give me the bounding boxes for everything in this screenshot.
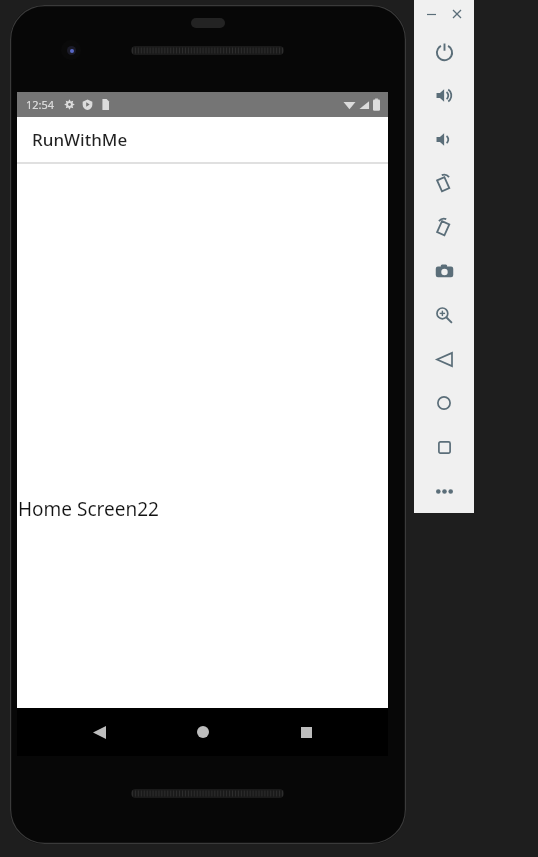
button[interactable]: Home Screen22 xyxy=(18,496,159,522)
button[interactable]: Home xyxy=(181,710,225,754)
button[interactable]: Recent apps xyxy=(284,710,328,754)
button[interactable]: Volume up xyxy=(414,73,474,117)
button[interactable]: Volume down xyxy=(414,117,474,161)
button[interactable]: Back xyxy=(414,337,474,381)
button[interactable]: Take screenshot xyxy=(414,249,474,293)
staticText: RunWithMe xyxy=(32,128,128,151)
button[interactable]: Power xyxy=(414,29,474,73)
button[interactable]: Zoom xyxy=(414,293,474,337)
staticText: 12:54 xyxy=(26,97,55,112)
button[interactable]: More xyxy=(414,469,474,513)
button[interactable]: Home xyxy=(414,381,474,425)
button[interactable]: Overview xyxy=(414,425,474,469)
button[interactable]: Minimize xyxy=(423,6,439,22)
button[interactable]: RunWithMe xyxy=(17,117,388,162)
button[interactable]: Rotate left xyxy=(414,161,474,205)
button[interactable]: Close xyxy=(449,6,465,22)
button[interactable]: Rotate right xyxy=(414,205,474,249)
button[interactable]: Back xyxy=(77,710,121,754)
